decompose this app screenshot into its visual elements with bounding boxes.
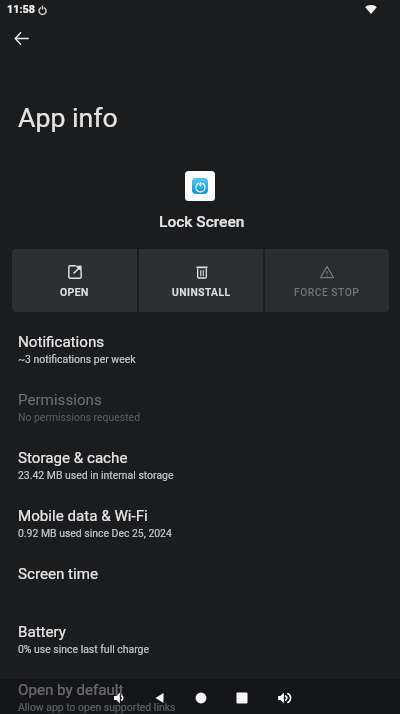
button[interactable]: Home <box>188 685 214 711</box>
staticText: FORCE STOP <box>294 286 360 298</box>
staticText: Permissions <box>18 391 102 409</box>
button[interactable]: Back <box>1 18 41 58</box>
button[interactable]: Mobile data & Wi-Fi <box>0 505 400 563</box>
staticText: 0.92 MB used since Dec 25, 2024 <box>18 527 172 539</box>
staticText: No permissions requested <box>18 411 141 423</box>
button[interactable]: Screen time <box>0 563 400 621</box>
button[interactable]: Storage & cache <box>0 447 400 505</box>
staticText: Battery <box>18 623 67 641</box>
staticText: OPEN <box>60 286 89 298</box>
staticText: Mobile data & Wi-Fi <box>18 507 148 525</box>
staticText: 11:58 <box>7 3 35 16</box>
button[interactable]: UNINSTALL <box>139 249 263 312</box>
button[interactable]: Volume up <box>272 685 298 711</box>
button[interactable]: Open by default <box>0 679 400 714</box>
staticText: 0% use since last full charge <box>18 643 150 655</box>
button[interactable]: OPEN <box>12 249 137 312</box>
button[interactable]: Recents <box>229 685 255 711</box>
staticText: App info <box>18 102 118 133</box>
staticText: Storage & cache <box>18 449 128 467</box>
button[interactable]: Permissions <box>0 389 400 447</box>
staticText: Open by default <box>18 681 124 699</box>
staticText: Lock Screen <box>159 213 245 231</box>
staticText: 23.42 MB used in internal storage <box>18 469 174 481</box>
button[interactable]: Battery <box>0 621 400 679</box>
staticText: ~3 notifications per week <box>18 353 136 365</box>
staticText: Screen time <box>18 565 99 583</box>
button[interactable]: Back <box>147 685 173 711</box>
staticText: Allow app to open supported links <box>18 701 176 713</box>
button[interactable]: Notifications <box>0 331 400 389</box>
button[interactable]: Volume down <box>107 685 133 711</box>
button[interactable]: FORCE STOP <box>265 249 389 312</box>
staticText: Notifications <box>18 333 105 351</box>
staticText: UNINSTALL <box>172 286 231 298</box>
